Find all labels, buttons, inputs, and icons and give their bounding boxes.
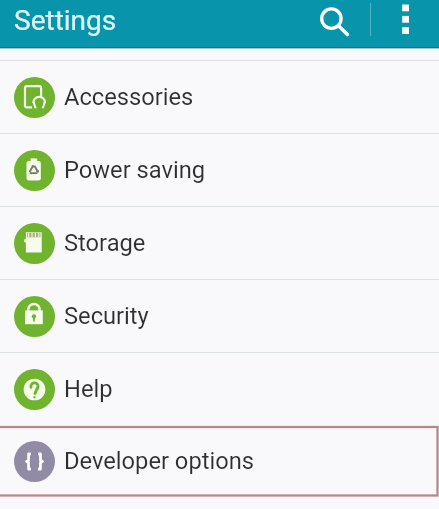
- button[interactable]: Storage: [0, 207, 439, 279]
- staticText: Storage: [64, 229, 146, 257]
- staticText: Accessories: [64, 83, 194, 111]
- button[interactable]: Power saving: [0, 134, 439, 206]
- staticText: Help: [64, 375, 113, 403]
- button[interactable]: Security: [0, 280, 439, 352]
- button[interactable]: Search: [310, 2, 353, 45]
- staticText: Power saving: [64, 156, 206, 184]
- button[interactable]: More options: [386, 0, 426, 40]
- button[interactable]: Developer options: [0, 425, 439, 497]
- staticText: Settings: [14, 4, 117, 37]
- staticText: Developer options: [64, 447, 255, 475]
- button[interactable]: Accessories: [0, 61, 439, 133]
- button[interactable]: Help: [0, 353, 439, 425]
- staticText: Security: [64, 302, 149, 330]
